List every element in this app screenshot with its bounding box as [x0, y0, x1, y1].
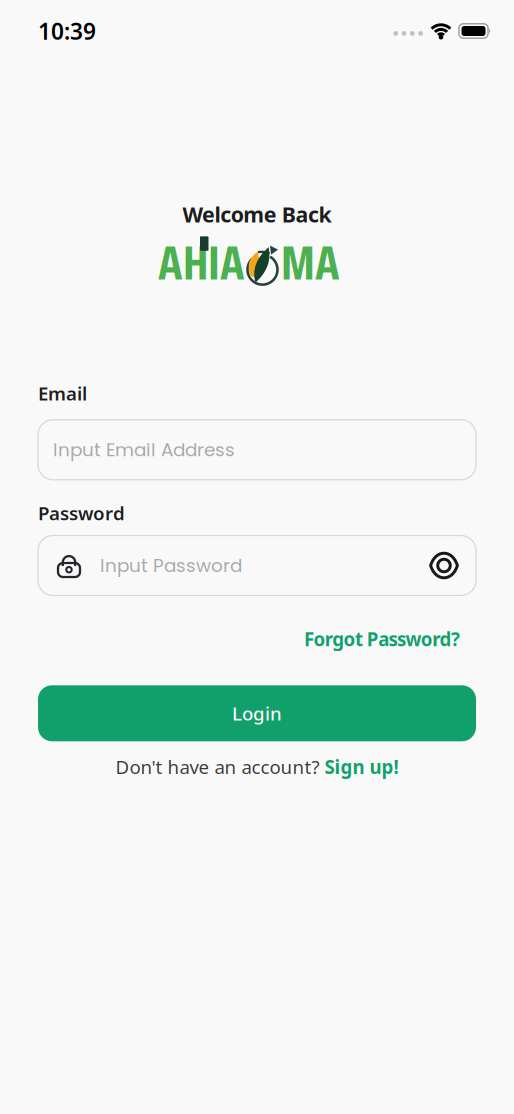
button[interactable]: Show password [429, 552, 476, 578]
button[interactable]: Input Password [38, 535, 476, 595]
staticText: 10:39 [38, 16, 96, 46]
staticText: Email [38, 381, 87, 406]
button[interactable]: Input Email Address [38, 420, 476, 480]
staticText: Sign up! [324, 754, 398, 779]
staticText: Welcome Back [182, 200, 331, 228]
staticText: MA [281, 224, 340, 301]
staticText: Input Password [100, 553, 242, 578]
staticText: Input Email Address [53, 437, 235, 463]
staticText: AHIA [158, 224, 245, 301]
button[interactable]: Sign up! [324, 754, 398, 779]
staticText: Forgot Password? [304, 626, 460, 651]
button[interactable]: Login [38, 685, 476, 741]
button[interactable]: Forgot Password? [304, 626, 460, 651]
staticText: Don't have an account? [115, 754, 324, 779]
staticText: Password [38, 501, 125, 525]
staticText: Login [232, 701, 282, 726]
